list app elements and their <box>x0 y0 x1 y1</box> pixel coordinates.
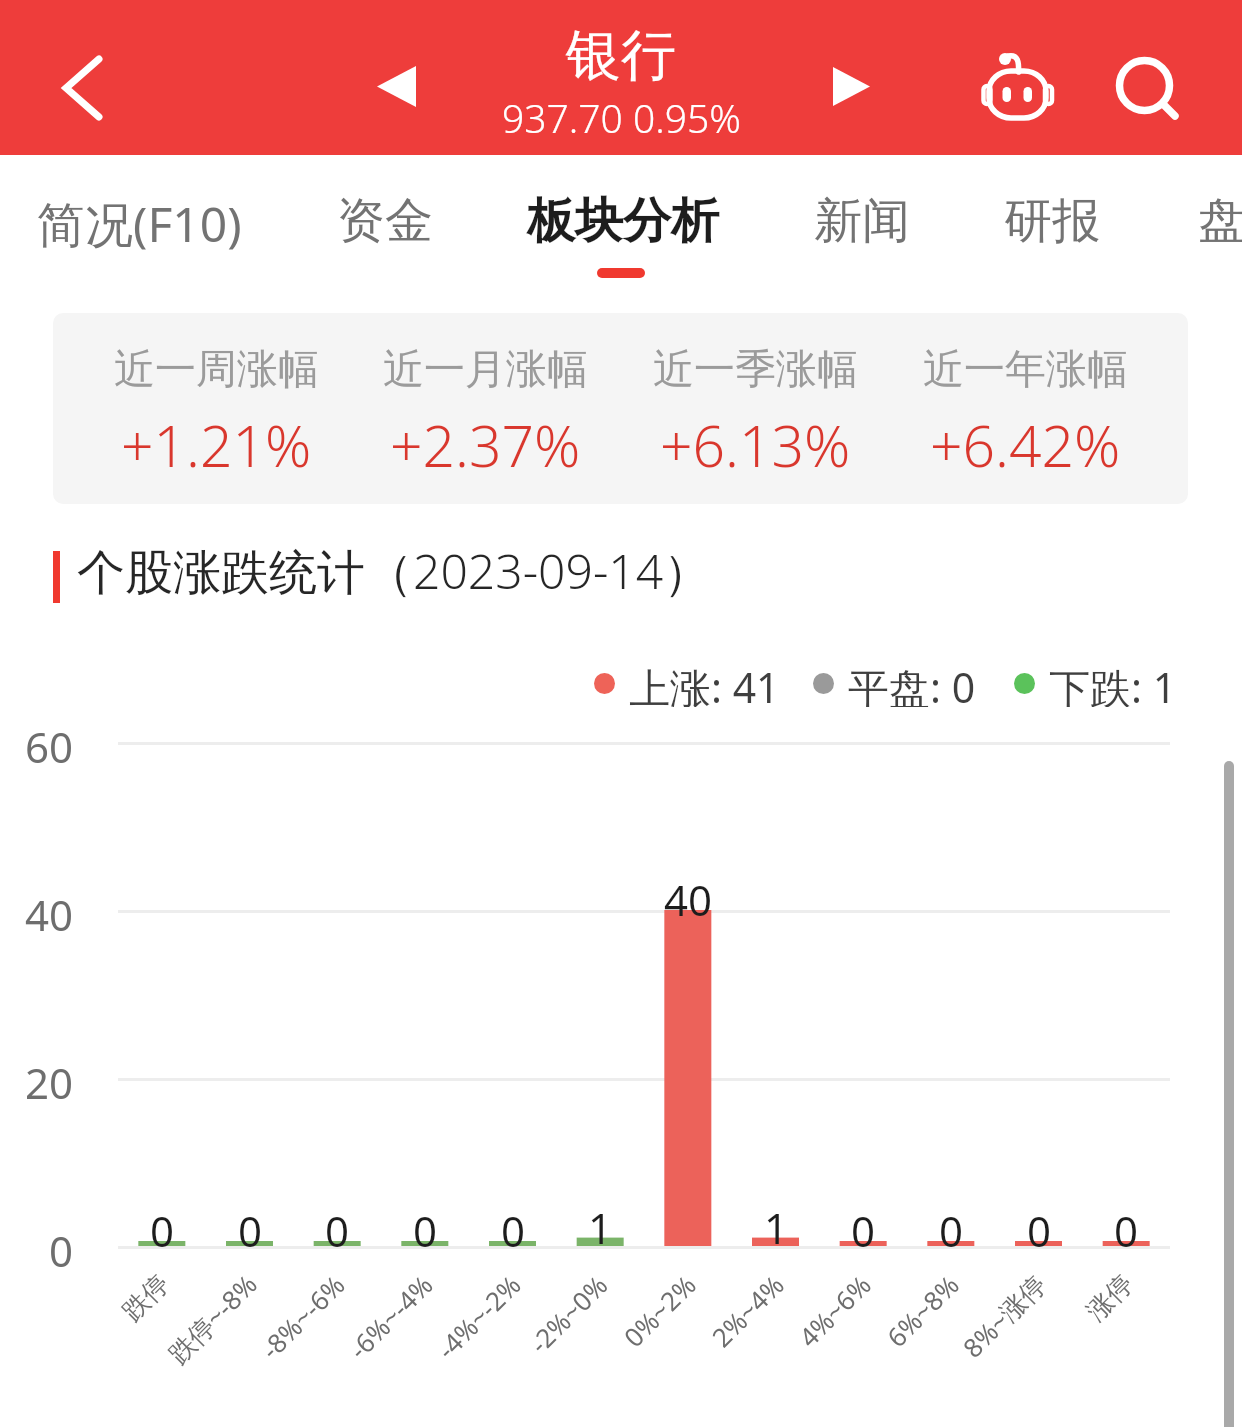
staticText: 0 <box>325 1202 350 1248</box>
staticText: +1.21% <box>121 406 312 484</box>
staticText: 近一季涨幅 <box>653 344 858 396</box>
staticText: 跌停 <box>116 1268 176 1328</box>
staticText: 40 <box>664 871 713 917</box>
staticText: +6.13% <box>660 406 851 484</box>
staticText: +6.42% <box>930 406 1121 484</box>
staticText: 1 <box>764 1199 789 1245</box>
staticText: 0 <box>150 1202 175 1248</box>
staticText: 简况(F10) <box>37 191 242 257</box>
button[interactable]: Next sector <box>793 27 913 147</box>
staticText: 0 <box>851 1202 876 1248</box>
button[interactable]: 近一季涨幅 <box>605 344 905 484</box>
button[interactable]: Previous sector <box>337 26 457 146</box>
staticText: 下跌: 1 <box>1049 659 1177 707</box>
staticText: 0 <box>939 1202 964 1248</box>
button[interactable]: 新闻 <box>814 191 910 263</box>
staticText: 60 <box>25 718 74 774</box>
button[interactable]: 平盘: 0 <box>813 659 976 707</box>
button[interactable]: 盘口 <box>1198 191 1242 263</box>
staticText: 0 <box>501 1202 526 1248</box>
staticText: 上涨: 41 <box>629 659 780 707</box>
button[interactable]: 近一周涨幅 <box>66 344 366 484</box>
staticText: 0 <box>1027 1202 1052 1248</box>
staticText: 0%~2% <box>616 1267 703 1354</box>
button[interactable]: 近一年涨幅 <box>875 344 1175 484</box>
staticText: 4%~6% <box>791 1267 878 1354</box>
staticText: 0 <box>49 1222 74 1278</box>
staticText: 0 <box>413 1202 438 1248</box>
staticText: 0 <box>1114 1202 1139 1248</box>
staticText: 0 <box>238 1202 263 1248</box>
button[interactable]: AI assistant <box>958 28 1078 148</box>
staticText: 盘口 <box>1198 191 1242 251</box>
staticText: 新闻 <box>814 191 910 251</box>
button[interactable]: Search <box>1086 26 1206 146</box>
staticText: 40 <box>25 886 74 942</box>
button[interactable]: 简况(F10) <box>37 191 242 269</box>
staticText: 1 <box>588 1199 613 1245</box>
button[interactable]: 近一月涨幅 <box>335 344 635 484</box>
staticText: 近一月涨幅 <box>383 344 588 396</box>
staticText: 2%~4% <box>704 1267 791 1354</box>
staticText: 近一年涨幅 <box>923 344 1128 396</box>
staticText: 板块分析 <box>527 191 719 251</box>
staticText: -6%~-4% <box>341 1267 440 1366</box>
staticText: -8%~-6% <box>253 1267 352 1366</box>
staticText: 20 <box>25 1054 74 1110</box>
staticText: -2%~0% <box>521 1267 615 1360</box>
staticText: 跌停~-8% <box>160 1266 265 1371</box>
button[interactable]: 上涨: 41 <box>594 659 780 707</box>
staticText: 资金 <box>337 191 433 251</box>
staticText: 937.70 0.95% <box>502 91 741 144</box>
button[interactable]: 下跌: 1 <box>1014 659 1177 707</box>
button[interactable]: 板块分析 <box>527 191 719 263</box>
staticText: 8%~涨停 <box>955 1266 1054 1365</box>
staticText: 近一周涨幅 <box>114 344 319 396</box>
staticText: 研报 <box>1004 191 1100 251</box>
button[interactable]: 资金 <box>337 191 433 263</box>
staticText: +2.37% <box>390 406 581 484</box>
staticText: 6%~8% <box>879 1267 966 1354</box>
staticText: 平盘: 0 <box>848 659 976 707</box>
staticText: 涨停 <box>1080 1268 1140 1328</box>
button[interactable]: 研报 <box>1004 191 1100 263</box>
staticText: 银行 <box>566 21 676 90</box>
staticText: -4%~-2% <box>429 1267 528 1366</box>
button[interactable]: Back <box>20 18 140 138</box>
staticText: 个股涨跌统计（2023-09-14） <box>77 538 712 604</box>
